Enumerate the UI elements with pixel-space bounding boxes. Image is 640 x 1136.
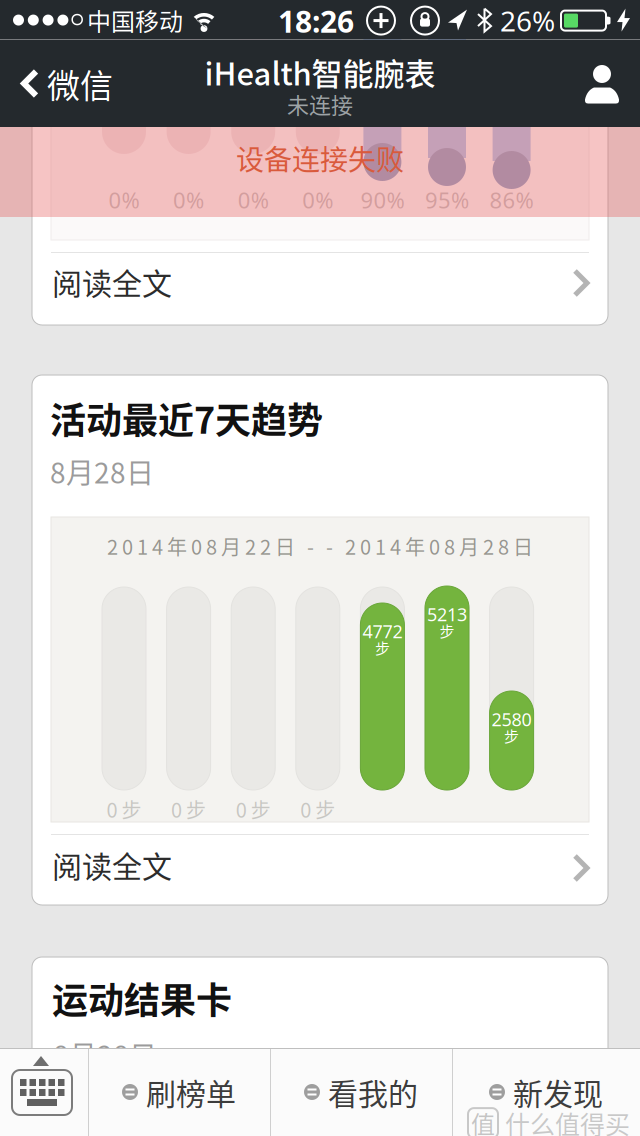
staticText: 2580 [492,707,532,731]
staticText: 90% [360,185,404,215]
staticText: iHealth智能腕表 [204,50,435,94]
staticText: 阅读全文 [52,843,172,886]
staticText: 0% [238,185,269,215]
staticText: 0 步 [171,794,206,823]
staticText: 8月28日 [53,1034,157,1074]
staticText: 看我的 [328,1070,418,1114]
button[interactable]: 看我的 [281,1048,441,1136]
staticText: 0% [302,185,333,215]
staticText: 步 [375,636,390,658]
staticText: 未连接 [287,88,353,120]
staticText: 5213 [427,602,467,626]
staticText: 4772 [362,619,402,643]
staticText: 8月28日 [50,451,154,491]
button[interactable]: 阅读全文 [32,253,608,325]
button[interactable]: 键盘输入 [0,1048,88,1136]
staticText: 0 步 [106,794,141,823]
staticText: 95% [425,185,469,215]
staticText: 86% [490,185,534,215]
staticText: 设备连接失败 [236,138,404,178]
staticText: 运动结果卡 [52,972,232,1024]
staticText: 微信 [47,60,113,107]
staticText: 26% [500,2,555,40]
staticText: 2014年08月22日 - - 2014年08月28日 [107,531,533,560]
staticText: 新发现 [513,1070,603,1114]
button[interactable]: 刷榜单 [99,1048,259,1136]
staticText: 0 步 [236,794,271,823]
staticText: 刷榜单 [146,1070,236,1114]
staticText: 什么值得买 [505,1105,630,1136]
staticText: 18:26 [278,1,354,41]
staticText: 中国移动 [87,3,183,37]
staticText: 活动最近7天趋势 [50,392,323,444]
staticText: 0 步 [300,794,335,823]
staticText: 步 [439,619,454,641]
button[interactable]: 微信 [0,40,113,127]
staticText: 步 [504,724,519,746]
staticText: 0% [108,185,139,215]
staticText: 值 [471,1106,495,1136]
staticText: 0% [173,185,204,215]
button[interactable]: 新发现 [466,1048,626,1136]
button[interactable]: 阅读全文 [32,835,608,905]
button[interactable]: 联系人 [570,40,640,127]
staticText: 阅读全文 [52,260,172,303]
